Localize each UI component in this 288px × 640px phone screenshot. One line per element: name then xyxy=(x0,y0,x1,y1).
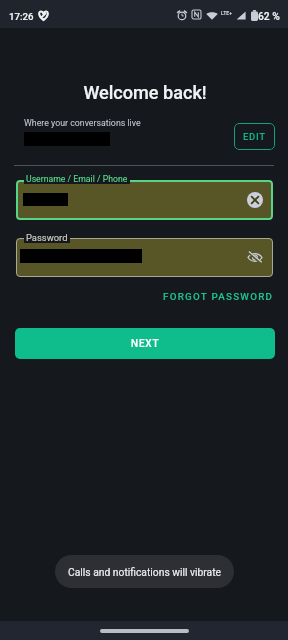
button[interactable]: Show password xyxy=(245,247,265,267)
staticText: LTE+ xyxy=(221,10,233,16)
staticText: EDIT xyxy=(243,131,266,142)
button[interactable]: NEXT xyxy=(15,328,275,359)
button[interactable]: FORGOT PASSWORD xyxy=(155,285,282,308)
button[interactable] xyxy=(16,238,273,277)
staticText: NEXT xyxy=(131,338,160,350)
staticText: Username / Email / Phone xyxy=(26,174,128,184)
button[interactable] xyxy=(16,180,273,220)
button[interactable]: Clear text xyxy=(245,190,265,210)
button[interactable]: EDIT xyxy=(234,123,275,150)
staticText: Welcome back! xyxy=(1,82,288,103)
staticText: Where your conversations live xyxy=(24,118,141,128)
staticText: FORGOT PASSWORD xyxy=(163,291,274,302)
staticText: Calls and notifications will vibrate xyxy=(68,566,222,578)
staticText: 62 % xyxy=(258,10,280,22)
staticText: Password xyxy=(26,232,68,243)
staticText: 17:26 xyxy=(9,11,34,22)
